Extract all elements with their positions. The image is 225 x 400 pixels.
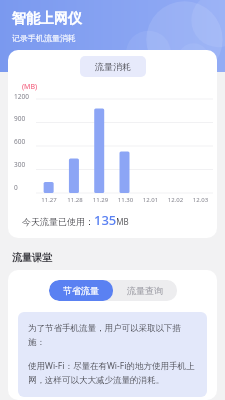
staticText: 为了节省手机流量，用户可以采取以下措施：	[28, 323, 197, 348]
staticText: 300	[14, 160, 26, 169]
staticText: (MB)	[22, 82, 38, 92]
staticText: 11.30	[113, 196, 138, 204]
staticText: 使用Wi-Fi：尽量在有Wi-Fi的地方使用手机上网，这样可以大大减少流量的消耗…	[28, 360, 197, 386]
staticText: 11.28	[62, 196, 88, 204]
staticText: 1200	[14, 92, 29, 101]
staticText: 900	[14, 114, 26, 123]
staticText: 流量课堂	[12, 251, 52, 264]
button[interactable]: 节省流量	[49, 280, 113, 301]
staticText: 0	[14, 183, 18, 192]
button[interactable]: 流量消耗	[80, 56, 146, 77]
staticText: 600	[14, 137, 26, 146]
staticText: 流量查询	[127, 285, 163, 296]
staticText: 12.02	[163, 196, 188, 204]
staticText: 12.03	[188, 196, 213, 204]
staticText: 流量消耗	[95, 61, 131, 72]
staticText: 今天流量已使用：135MB	[22, 211, 129, 229]
staticText: 智能上网仪	[12, 10, 82, 28]
button[interactable]: 流量查询	[113, 280, 177, 301]
staticText: 12.01	[138, 196, 163, 204]
staticText: 记录手机流量消耗	[12, 33, 76, 43]
staticText: 11.29	[88, 196, 113, 204]
staticText: 节省流量	[63, 285, 99, 296]
staticText: 11.27	[36, 196, 62, 204]
